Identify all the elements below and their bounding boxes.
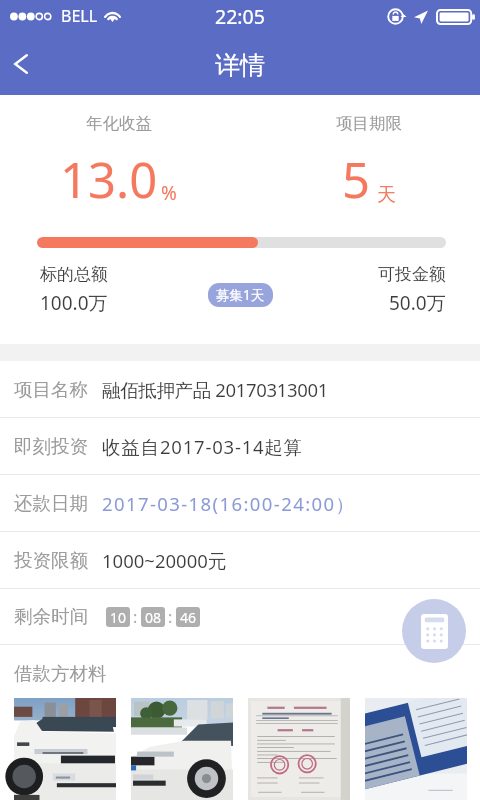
button[interactable]: Photo xyxy=(131,698,233,800)
staticText: 10 xyxy=(110,608,127,627)
staticText: 天 xyxy=(377,183,396,207)
staticText: 详情 xyxy=(215,50,265,81)
button[interactable]: 募集1天 xyxy=(208,283,273,307)
staticText: 50.0万 xyxy=(389,290,446,316)
staticText: 可投金额 xyxy=(378,264,446,285)
staticText: 年化收益 xyxy=(86,113,152,134)
button[interactable]: 项目名称 xyxy=(0,361,480,417)
staticText: 融佰抵押产品 20170313001 xyxy=(102,377,328,402)
staticText: % xyxy=(161,180,177,206)
staticText: : xyxy=(168,606,173,628)
staticText: 募集1天 xyxy=(216,286,265,304)
staticText: 收益自2017-03-14起算 xyxy=(102,434,304,459)
staticText: 投资限额 xyxy=(14,549,88,572)
staticText: 1000~20000元 xyxy=(102,548,227,573)
button[interactable]: 投资限额 xyxy=(0,532,480,588)
button[interactable]: 即刻投资 xyxy=(0,418,480,474)
staticText: 5 xyxy=(342,146,371,213)
staticText: 46 xyxy=(180,608,197,627)
staticText: BELL xyxy=(61,5,98,27)
button[interactable]: Back xyxy=(0,43,42,85)
button[interactable]: Photo xyxy=(14,698,116,800)
staticText: 剩余时间 xyxy=(14,605,88,628)
staticText: : xyxy=(133,606,138,628)
button[interactable]: 还款日期 xyxy=(0,475,480,531)
staticText: 22:05 xyxy=(215,3,265,30)
staticText: 08 xyxy=(145,608,162,627)
staticText: 即刻投资 xyxy=(14,435,88,458)
staticText: 标的总额 xyxy=(40,264,108,285)
staticText: 100.0万 xyxy=(40,290,108,316)
staticText: 13.0 xyxy=(60,146,158,213)
staticText: 2017-03-18(16:00-24:00） xyxy=(102,491,356,516)
staticText: 项目期限 xyxy=(336,113,402,134)
button[interactable]: Photo xyxy=(365,698,467,800)
button[interactable]: Calculator xyxy=(402,599,466,663)
staticText: 项目名称 xyxy=(14,378,88,401)
button[interactable]: Photo xyxy=(248,698,350,800)
staticText: 借款方材料 xyxy=(14,662,107,685)
staticText: 还款日期 xyxy=(14,492,88,515)
